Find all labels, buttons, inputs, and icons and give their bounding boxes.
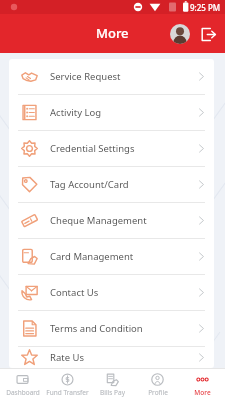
button[interactable]: Cheque Management (9, 203, 214, 238)
button[interactable]: Dashboard (0, 369, 45, 400)
staticText: Card Management (50, 250, 188, 263)
button[interactable]: Credential Settings (9, 131, 214, 166)
staticText: More (194, 388, 211, 397)
button[interactable]: Rate Us (9, 347, 214, 368)
staticText: Activity Log (50, 106, 188, 119)
staticText: Dashboard (6, 388, 40, 397)
staticText: Cheque Management (50, 214, 188, 227)
staticText: More (96, 24, 129, 42)
staticText: Fund Transfer (46, 388, 89, 397)
staticText: Tag Account/Card (50, 178, 188, 191)
button[interactable]: Activity Log (9, 95, 214, 130)
button[interactable]: Terms and Condition (9, 311, 214, 346)
button[interactable]: Bills Pay (90, 369, 135, 400)
staticText: Service Request (50, 70, 188, 83)
staticText: Contact Us (50, 286, 188, 299)
staticText: Bills Pay (100, 388, 125, 397)
button[interactable]: Card Management (9, 239, 214, 274)
button[interactable]: More (180, 369, 225, 400)
staticText: Credential Settings (50, 142, 188, 155)
button[interactable]: Contact Us (9, 275, 214, 310)
staticText: Rate Us (50, 351, 188, 364)
button[interactable]: Tag Account/Card (9, 167, 214, 202)
staticText: Profile (148, 388, 168, 397)
staticText: Terms and Condition (50, 322, 188, 335)
button[interactable]: Profile picture (170, 24, 190, 44)
button[interactable]: Fund Transfer (45, 369, 90, 400)
staticText: 9:25 PM (190, 2, 221, 13)
button[interactable]: Profile (135, 369, 180, 400)
button[interactable]: Logout (197, 23, 219, 45)
button[interactable]: Service Request (9, 59, 214, 94)
